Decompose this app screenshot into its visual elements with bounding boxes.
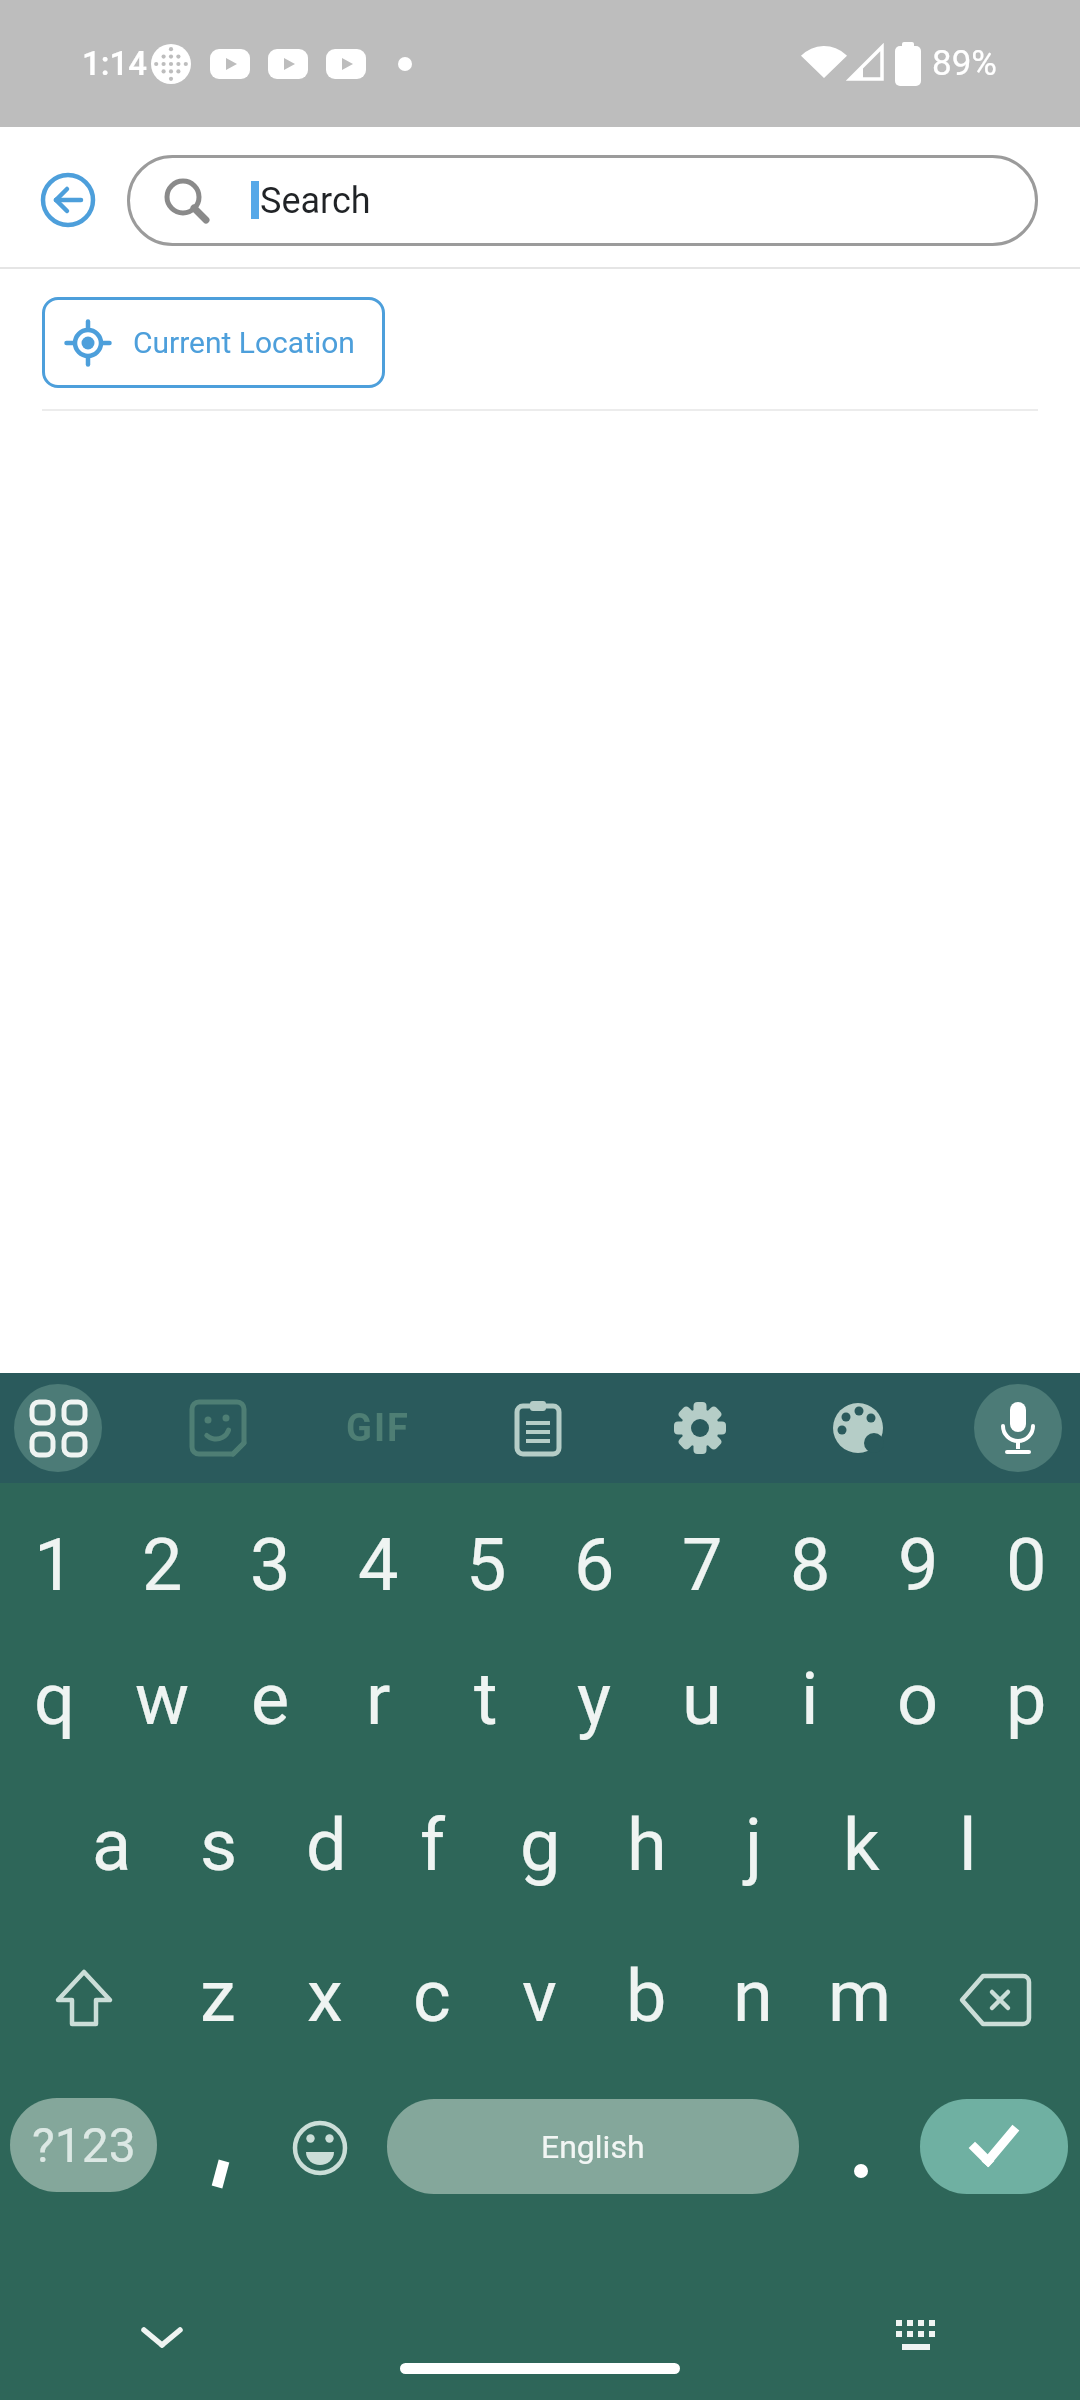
button[interactable]: a [58, 1778, 166, 1912]
staticText: Search [260, 180, 371, 222]
button[interactable]: o [864, 1632, 972, 1766]
button[interactable]: t [432, 1632, 540, 1766]
button[interactable]: g [486, 1778, 594, 1912]
button[interactable]: r [324, 1632, 432, 1766]
button[interactable]: s [165, 1778, 273, 1912]
button[interactable] [660, 1388, 740, 1468]
button[interactable] [36, 168, 100, 232]
staticText: p [1006, 1657, 1047, 1741]
staticText: q [34, 1657, 75, 1741]
button[interactable]: 8 [756, 1498, 864, 1632]
button[interactable] [498, 1388, 578, 1468]
staticText: 1 [34, 1523, 75, 1607]
button[interactable]: 6 [540, 1498, 648, 1632]
button[interactable] [806, 2092, 914, 2200]
button[interactable]: u [648, 1632, 756, 1766]
staticText: k [843, 1803, 880, 1887]
staticText: t [474, 1657, 498, 1741]
staticText: 6 [574, 1523, 615, 1607]
staticText: Current Location [133, 325, 355, 360]
staticText: 9 [898, 1523, 939, 1607]
button[interactable]: 3 [216, 1498, 324, 1632]
staticText: u [682, 1657, 722, 1741]
button[interactable]: z [164, 1929, 272, 2063]
button[interactable]: w [108, 1632, 216, 1766]
staticText: d [306, 1803, 347, 1887]
button[interactable] [974, 1384, 1062, 1472]
staticText: z [200, 1954, 236, 2038]
button[interactable]: Search [127, 155, 1038, 246]
button[interactable]: e [216, 1632, 324, 1766]
staticText: English [541, 2128, 645, 2166]
staticText: 2 [142, 1523, 183, 1607]
staticText: a [92, 1803, 132, 1887]
staticText: o [897, 1657, 939, 1741]
button[interactable]: 1 [0, 1498, 108, 1632]
staticText: b [626, 1954, 667, 2038]
staticText: s [200, 1803, 238, 1887]
staticText: f [420, 1803, 446, 1887]
staticText: i [801, 1657, 819, 1741]
button[interactable]: 2 [108, 1498, 216, 1632]
button[interactable]: d [272, 1778, 380, 1912]
button[interactable] [270, 2098, 370, 2198]
staticText: 89% [932, 43, 997, 84]
button[interactable]: j [700, 1778, 808, 1912]
button[interactable] [178, 1388, 258, 1468]
button[interactable]: p [972, 1632, 1080, 1766]
button[interactable]: English [387, 2099, 799, 2194]
button[interactable]: 9 [864, 1498, 972, 1632]
button[interactable]: x [271, 1929, 379, 2063]
staticText: 7 [682, 1523, 723, 1607]
staticText: x [307, 1954, 343, 2038]
button[interactable] [920, 2099, 1068, 2194]
staticText: y [577, 1657, 612, 1741]
staticText: 0 [1006, 1523, 1047, 1607]
button[interactable]: ?123 [10, 2098, 157, 2192]
button[interactable]: q [0, 1632, 108, 1766]
staticText: 5 [466, 1523, 507, 1607]
button[interactable] [935, 1933, 1055, 2067]
button[interactable] [867, 2297, 967, 2377]
button[interactable] [818, 1388, 898, 1468]
staticText: h [627, 1803, 667, 1887]
button[interactable]: GIF [328, 1388, 428, 1468]
button[interactable]: f [379, 1778, 487, 1912]
button[interactable]: h [593, 1778, 701, 1912]
staticText: j [745, 1803, 763, 1887]
staticText: 4 [358, 1523, 399, 1607]
button[interactable]: c [378, 1929, 486, 2063]
button[interactable] [112, 2297, 212, 2377]
button[interactable]: k [807, 1778, 915, 1912]
button[interactable]: i [756, 1632, 864, 1766]
staticText: GIF [346, 1406, 410, 1451]
button[interactable]: 7 [648, 1498, 756, 1632]
staticText: c [413, 1954, 451, 2038]
button[interactable]: Current Location [42, 297, 385, 388]
button[interactable]: 4 [324, 1498, 432, 1632]
staticText: ?123 [32, 2117, 136, 2173]
staticText: n [733, 1954, 773, 2038]
staticText: 3 [250, 1523, 291, 1607]
staticText: m [828, 1954, 892, 2038]
staticText: 1:14 [82, 44, 148, 83]
button[interactable]: y [540, 1632, 648, 1766]
button[interactable] [164, 2092, 272, 2200]
staticText: 8 [790, 1523, 831, 1607]
button[interactable]: 0 [972, 1498, 1080, 1632]
button[interactable]: v [485, 1929, 593, 2063]
button[interactable] [14, 1384, 102, 1472]
button[interactable]: m [806, 1929, 914, 2063]
staticText: l [959, 1803, 977, 1887]
staticText: v [522, 1954, 557, 2038]
staticText: e [251, 1657, 290, 1741]
button[interactable] [24, 1933, 144, 2067]
staticText: w [135, 1657, 190, 1741]
staticText: r [366, 1657, 391, 1741]
button[interactable]: l [914, 1778, 1022, 1912]
button[interactable]: 5 [432, 1498, 540, 1632]
button[interactable]: n [699, 1929, 807, 2063]
staticText: g [520, 1803, 561, 1887]
button[interactable]: b [592, 1929, 700, 2063]
